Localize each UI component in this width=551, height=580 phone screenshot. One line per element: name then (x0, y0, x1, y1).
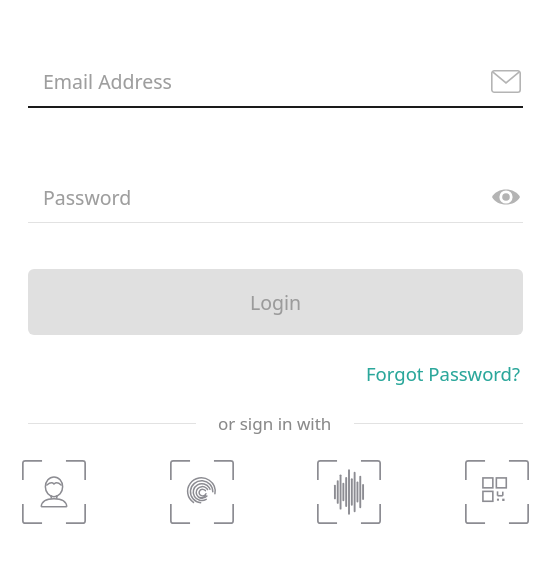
button[interactable]: Email Address (28, 56, 523, 106)
button[interactable]: Show password (489, 180, 523, 214)
staticText: or sign in with (218, 412, 332, 434)
button[interactable]: Login (28, 269, 523, 335)
button[interactable]: Voice login (317, 460, 381, 524)
button[interactable]: QR code login (465, 460, 529, 524)
button[interactable]: Forgot Password? (364, 355, 523, 392)
staticText: Email Address (43, 68, 172, 95)
button[interactable]: Face login (22, 460, 86, 524)
staticText: Forgot Password? (366, 361, 521, 386)
button[interactable]: Fingerprint login (170, 460, 234, 524)
staticText: Password (43, 184, 132, 211)
button[interactable]: Password (28, 172, 523, 222)
button[interactable]: Email (489, 64, 523, 98)
staticText: Login (250, 289, 302, 316)
